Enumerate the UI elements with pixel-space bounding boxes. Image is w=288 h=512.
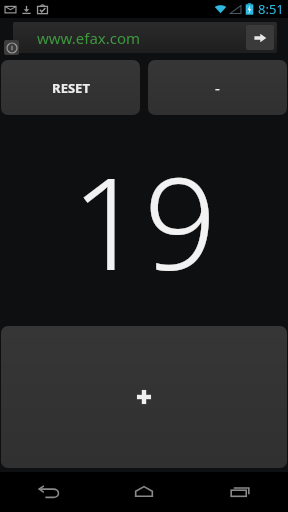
button[interactable]: Go (246, 25, 274, 50)
button[interactable]: - (148, 60, 287, 115)
button[interactable]: Recents (192, 472, 288, 512)
button[interactable]: Back (0, 472, 96, 512)
staticText: - (215, 78, 220, 98)
button[interactable]: Page info (4, 40, 19, 55)
button[interactable]: www.efax.com (13, 22, 277, 53)
staticText: 8:51 (258, 0, 284, 18)
button[interactable]: Home (96, 472, 192, 512)
button[interactable]: Increment (1, 326, 287, 468)
staticText: www.efax.com (37, 28, 246, 48)
staticText: 19 (71, 134, 217, 307)
button[interactable]: RESET (1, 60, 140, 115)
staticText: RESET (52, 79, 90, 97)
